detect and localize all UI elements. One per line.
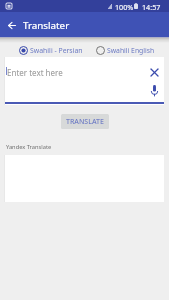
- button[interactable]: Swahili - Persian: [19, 45, 83, 56]
- staticText: 14:57: [142, 2, 161, 12]
- staticText: Yandex Translate: [6, 143, 52, 151]
- staticText: Swahili English: [107, 46, 155, 55]
- button[interactable]: Back: [3, 12, 22, 37]
- staticText: TRANSLATE: [66, 117, 104, 127]
- button[interactable]: TRANSLATE: [61, 114, 109, 129]
- staticText: 100%: [115, 2, 134, 12]
- staticText: Swahili - Persian: [30, 46, 83, 55]
- staticText: Translater: [23, 19, 70, 32]
- button[interactable]: Swahili English: [96, 45, 155, 56]
- button[interactable]: Clear text: [144, 64, 165, 81]
- button[interactable]: Voice input: [144, 81, 165, 100]
- staticText: Enter text here: [7, 67, 63, 78]
